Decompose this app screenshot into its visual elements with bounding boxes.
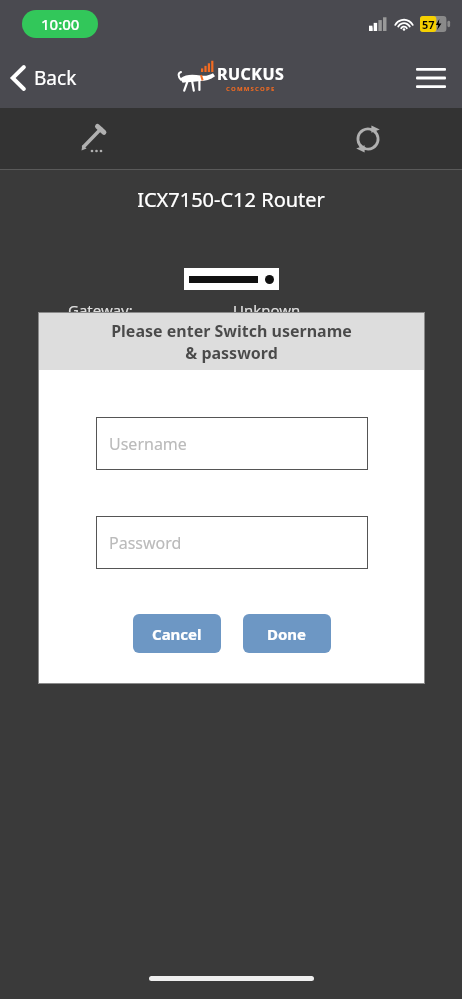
button[interactable]: Username: [97, 418, 367, 469]
staticText: COMMSCOPE: [226, 85, 276, 93]
staticText: Unknown: [233, 300, 301, 320]
staticText: ICX7150-C12 Router: [0, 186, 462, 213]
staticText: Cancel: [152, 624, 202, 644]
button[interactable]: Refresh: [344, 115, 392, 163]
button[interactable]: Cancel: [133, 614, 221, 653]
button[interactable]: Edit: [70, 114, 120, 164]
staticText: Password: [109, 532, 182, 554]
staticText: Gateway:: [68, 300, 233, 320]
staticText: N/A: [233, 337, 260, 357]
staticText: Please enter Switch username & password: [111, 320, 352, 364]
staticText: 0 Connected with Warning: [233, 398, 420, 418]
button[interactable]: Back: [0, 57, 89, 99]
staticText: 0 Blocked by Admin: [233, 446, 372, 466]
button[interactable]: Password: [97, 517, 367, 568]
staticText: Last seen:: [68, 337, 233, 357]
staticText: 10:00: [41, 14, 80, 34]
button[interactable]: Done: [243, 614, 331, 653]
staticText: Done: [267, 624, 307, 644]
staticText: Username: [109, 433, 187, 455]
staticText: RUCKUS: [217, 63, 285, 85]
button[interactable]: Menu: [400, 54, 462, 102]
staticText: 57: [422, 17, 435, 32]
staticText: Back: [34, 65, 77, 91]
staticText: 0 mWatts Used: [233, 504, 340, 524]
